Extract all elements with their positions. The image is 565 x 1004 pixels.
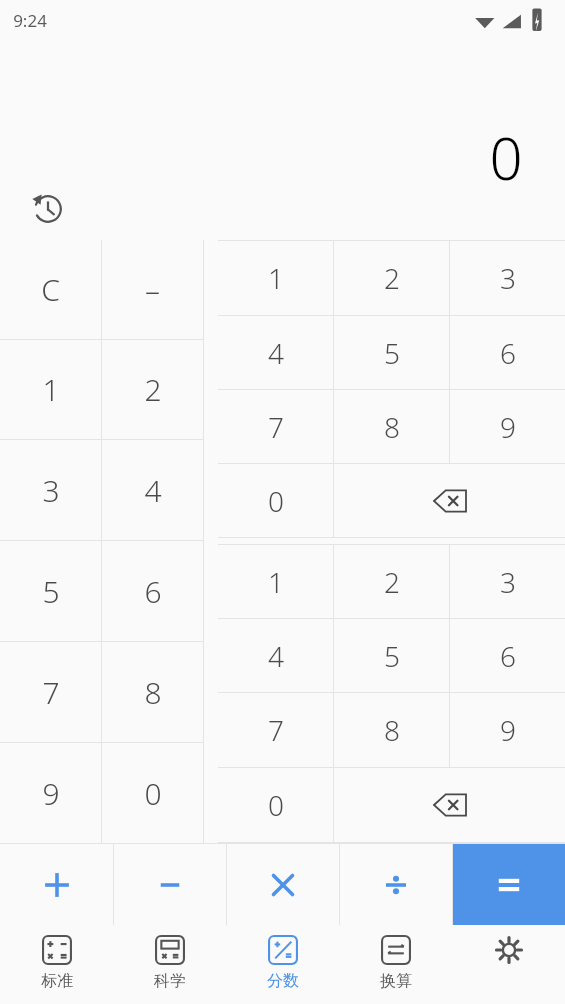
button[interactable]: 8 bbox=[102, 642, 203, 742]
staticText: 8 bbox=[384, 711, 400, 749]
staticText: 3 bbox=[500, 259, 516, 297]
staticText: 分数 bbox=[267, 971, 299, 991]
button[interactable]: 7 bbox=[0, 642, 101, 742]
button[interactable]: Plus bbox=[0, 844, 113, 925]
staticText: 5 bbox=[384, 334, 400, 372]
button[interactable]: 8 bbox=[334, 693, 449, 767]
button[interactable]: 8 bbox=[334, 390, 449, 463]
staticText: 4 bbox=[268, 334, 284, 372]
staticText: 8 bbox=[384, 408, 400, 446]
button[interactable]: Equals bbox=[453, 844, 565, 925]
button[interactable]: 0 bbox=[102, 743, 203, 843]
button[interactable]: 6 bbox=[450, 619, 565, 692]
staticText: 3 bbox=[500, 563, 516, 601]
staticText: 6 bbox=[500, 334, 516, 372]
staticText: – bbox=[145, 269, 160, 310]
button[interactable]: History bbox=[28, 189, 68, 229]
button[interactable]: 1 bbox=[218, 241, 333, 315]
staticText: 6 bbox=[500, 637, 516, 675]
staticText: 科学 bbox=[154, 971, 186, 991]
button[interactable]: 换算 bbox=[339, 925, 452, 1004]
button[interactable]: Backspace bbox=[334, 464, 565, 537]
button[interactable]: 7 bbox=[218, 693, 333, 767]
staticText: 6 bbox=[144, 571, 162, 612]
button[interactable]: 2 bbox=[102, 340, 203, 439]
button[interactable]: 9 bbox=[0, 743, 101, 843]
button[interactable]: 0 bbox=[218, 464, 333, 537]
staticText: 4 bbox=[268, 637, 284, 675]
staticText: 7 bbox=[268, 711, 284, 749]
staticText: 2 bbox=[144, 369, 162, 410]
staticText: 标准 bbox=[41, 971, 73, 991]
button[interactable]: 5 bbox=[334, 316, 449, 389]
staticText: 0 bbox=[489, 118, 523, 197]
staticText: 5 bbox=[42, 571, 60, 612]
button[interactable]: 2 bbox=[334, 241, 449, 315]
button[interactable]: 1 bbox=[0, 340, 101, 439]
button[interactable]: 0 bbox=[218, 768, 333, 842]
staticText: 换算 bbox=[380, 971, 412, 991]
button[interactable]: C bbox=[0, 240, 101, 339]
staticText: 0 bbox=[268, 482, 284, 520]
button[interactable]: Multiply bbox=[227, 844, 339, 925]
staticText: 4 bbox=[144, 470, 162, 511]
button[interactable]: 3 bbox=[450, 241, 565, 315]
button[interactable]: 分数 bbox=[226, 925, 339, 1004]
button[interactable]: 9 bbox=[450, 693, 565, 767]
button[interactable]: 6 bbox=[450, 316, 565, 389]
staticText: 5 bbox=[384, 637, 400, 675]
staticText: 9 bbox=[42, 773, 60, 814]
staticText: 2 bbox=[384, 563, 400, 601]
button[interactable]: 标准 bbox=[0, 925, 113, 1004]
button[interactable]: 3 bbox=[450, 545, 565, 618]
button[interactable]: 5 bbox=[0, 541, 101, 641]
button[interactable]: 7 bbox=[218, 390, 333, 463]
staticText: 9:24 bbox=[13, 9, 47, 32]
staticText: 3 bbox=[42, 470, 60, 511]
staticText: 0 bbox=[144, 773, 162, 814]
button[interactable]: 科学 bbox=[113, 925, 226, 1004]
staticText: 1 bbox=[42, 369, 60, 410]
staticText: 8 bbox=[144, 672, 162, 713]
button[interactable]: Minus bbox=[114, 844, 226, 925]
button[interactable]: 6 bbox=[102, 541, 203, 641]
button[interactable]: 1 bbox=[218, 545, 333, 618]
staticText: 2 bbox=[384, 259, 400, 297]
button[interactable]: 5 bbox=[334, 619, 449, 692]
button[interactable]: Settings bbox=[452, 925, 565, 1004]
staticText: 9 bbox=[500, 408, 516, 446]
button[interactable]: – bbox=[102, 240, 203, 339]
button[interactable]: 4 bbox=[102, 440, 203, 540]
button[interactable]: 4 bbox=[218, 316, 333, 389]
staticText: C bbox=[41, 269, 60, 310]
staticText: 1 bbox=[268, 259, 284, 297]
button[interactable]: 3 bbox=[0, 440, 101, 540]
button[interactable]: 4 bbox=[218, 619, 333, 692]
staticText: 1 bbox=[268, 563, 284, 601]
button[interactable]: 2 bbox=[334, 545, 449, 618]
button[interactable]: Divide bbox=[340, 844, 452, 925]
staticText: 7 bbox=[268, 408, 284, 446]
button[interactable]: Backspace bbox=[334, 768, 565, 842]
staticText: 9 bbox=[500, 711, 516, 749]
staticText: 0 bbox=[268, 786, 284, 824]
staticText: 7 bbox=[42, 672, 60, 713]
button[interactable]: 9 bbox=[450, 390, 565, 463]
